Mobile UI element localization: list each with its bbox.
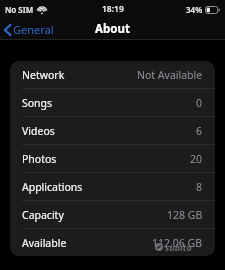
staticText: 128 GB (167, 208, 203, 222)
staticText: Available (22, 236, 67, 250)
other: subito watermark (155, 241, 192, 253)
staticText: General (13, 22, 54, 37)
button[interactable]: Applications (10, 173, 215, 200)
staticText: Videos (22, 124, 55, 138)
staticText: 20 (190, 152, 203, 166)
button[interactable]: Videos (10, 117, 215, 144)
staticText: 8 (196, 180, 203, 194)
button[interactable]: Capacity (10, 201, 215, 228)
staticText: 34% (186, 4, 203, 15)
staticText: 6 (196, 124, 203, 138)
button[interactable]: Available (10, 229, 215, 256)
staticText: Network (22, 68, 65, 82)
staticText: Not Available (137, 68, 203, 82)
staticText: subito (165, 241, 192, 253)
button[interactable]: Network (10, 61, 215, 88)
button[interactable]: Songs (10, 89, 215, 116)
staticText: No SIM (5, 4, 34, 15)
staticText: Photos (22, 152, 57, 166)
staticText: 18:19 (102, 3, 124, 15)
button[interactable]: Photos (10, 145, 215, 172)
staticText: Songs (22, 96, 53, 110)
button[interactable]: General (0, 20, 62, 39)
staticText: Capacity (22, 208, 64, 222)
staticText: Applications (22, 180, 83, 194)
staticText: 112,06 GB (152, 236, 203, 250)
staticText: About (95, 21, 130, 37)
staticText: 0 (196, 96, 203, 110)
